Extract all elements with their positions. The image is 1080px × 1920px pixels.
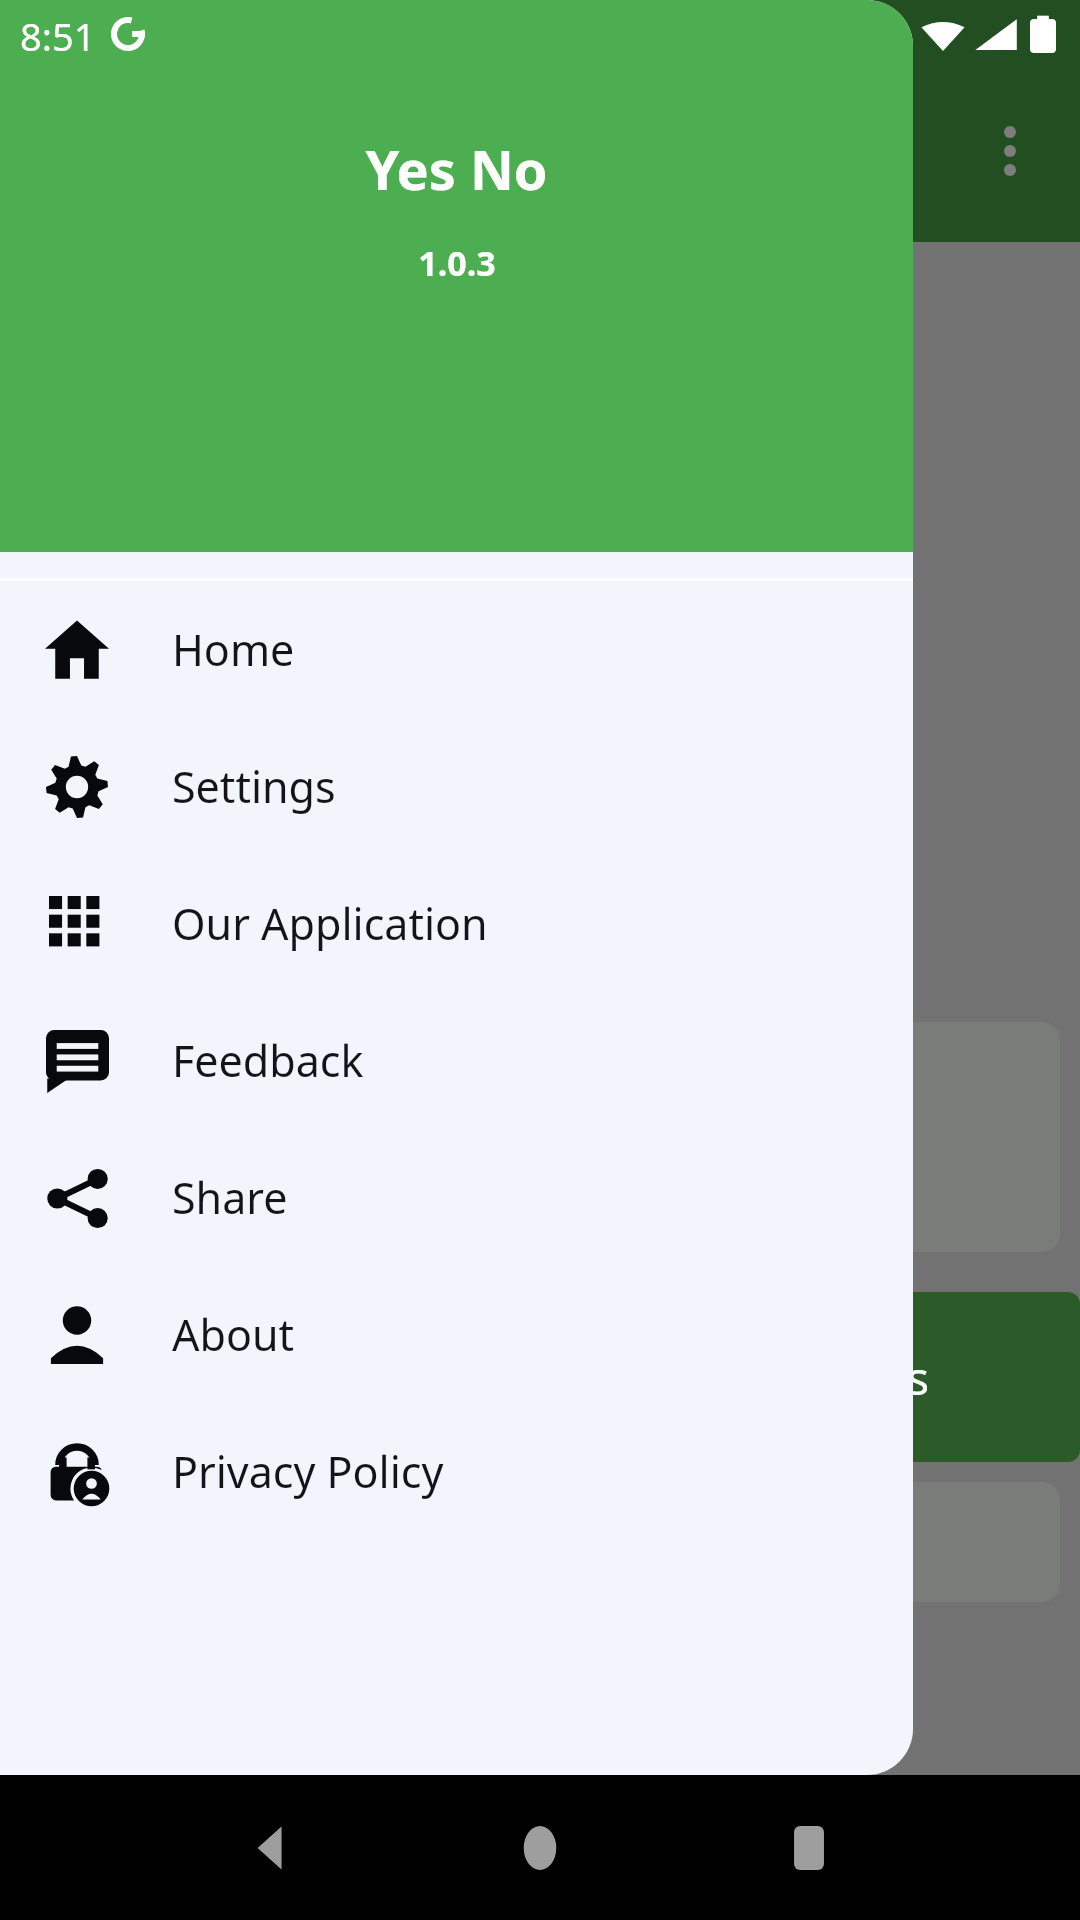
button[interactable]: Back [215, 1792, 327, 1904]
button[interactable]: Feedback [0, 992, 913, 1129]
staticText: Home [172, 620, 295, 679]
staticText: Feedback [172, 1031, 364, 1090]
button[interactable]: Privacy Policy [0, 1403, 913, 1540]
staticText: Share [172, 1168, 288, 1227]
staticText: 8:51 [20, 10, 96, 62]
staticText: 1.0.3 [418, 240, 496, 286]
button[interactable]: More options [958, 99, 1062, 203]
button[interactable]: Share [0, 1129, 913, 1266]
staticText: Yes No [365, 132, 548, 206]
button[interactable]: Recent apps [753, 1792, 865, 1904]
staticText: Our Application [172, 894, 488, 953]
button[interactable]: Home [484, 1792, 596, 1904]
staticText: About [172, 1305, 295, 1364]
button[interactable]: Our Application [0, 855, 913, 992]
button[interactable]: Home [0, 581, 913, 718]
staticText: Questions [710, 1346, 930, 1409]
staticText: Privacy Policy [172, 1442, 444, 1501]
button[interactable]: About [0, 1266, 913, 1403]
button[interactable]: Settings [0, 718, 913, 855]
staticText: Settings [172, 757, 336, 816]
